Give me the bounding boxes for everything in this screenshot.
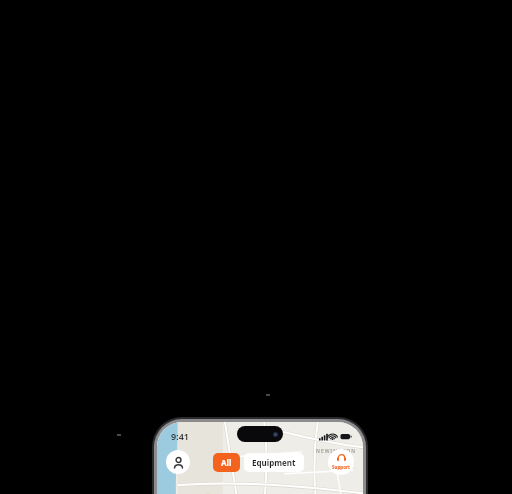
staticText: Support xyxy=(332,464,350,470)
staticText: NEWINGTON xyxy=(316,448,357,455)
staticText: Equipment xyxy=(252,457,296,468)
button[interactable]: Equipment xyxy=(244,453,304,472)
button[interactable]: Profile xyxy=(166,450,190,474)
button[interactable]: Support xyxy=(328,449,354,475)
staticText: All xyxy=(221,457,232,468)
button[interactable]: All xyxy=(213,453,240,472)
staticText: 9:41 xyxy=(171,430,189,442)
